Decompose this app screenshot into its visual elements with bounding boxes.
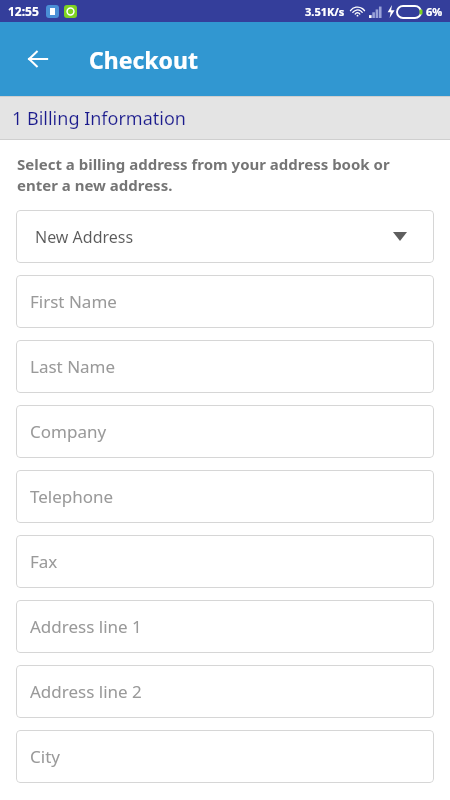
staticText: First Name [30, 290, 117, 313]
button[interactable]: Back [14, 35, 62, 83]
button[interactable]: Telephone [16, 470, 434, 523]
staticText: City [30, 745, 60, 768]
staticText: 6% [426, 4, 443, 19]
staticText: Fax [30, 550, 58, 573]
staticText: Company [30, 420, 107, 443]
staticText: Address line 2 [30, 680, 142, 703]
button[interactable]: City [16, 730, 434, 783]
button[interactable]: Address line 1 [16, 600, 434, 653]
staticText: Select a billing address from your addre… [17, 154, 433, 196]
staticText: Address line 1 [30, 615, 142, 638]
staticText: Checkout [89, 44, 198, 75]
button[interactable]: Address line 2 [16, 665, 434, 718]
button[interactable]: Company [16, 405, 434, 458]
staticText: Last Name [30, 355, 116, 378]
staticText: 12:55 [8, 3, 39, 19]
button[interactable]: First Name [16, 275, 434, 328]
staticText: Telephone [30, 485, 114, 508]
button[interactable]: New Address [16, 210, 434, 263]
staticText: New Address [35, 226, 134, 248]
button[interactable]: Fax [16, 535, 434, 588]
staticText: 3.51K/s [305, 4, 345, 19]
button[interactable]: Last Name [16, 340, 434, 393]
staticText: 1 Billing Information [12, 106, 186, 131]
button[interactable]: 1 Billing Information [0, 97, 450, 139]
